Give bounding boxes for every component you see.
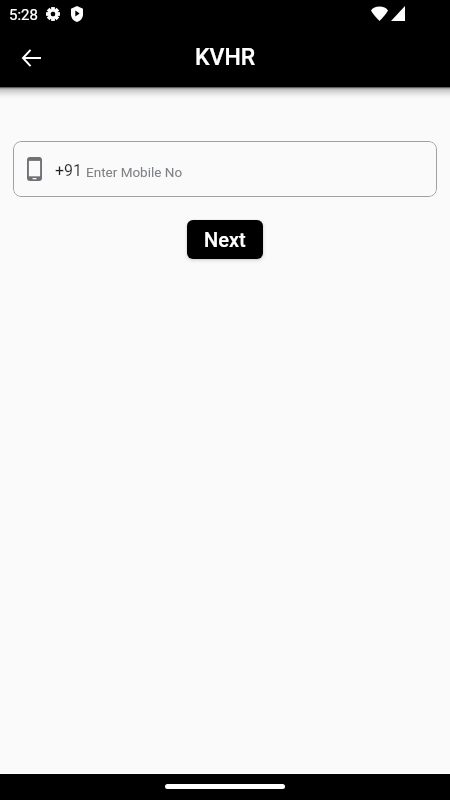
- button[interactable]: Back: [9, 36, 53, 80]
- staticText: +91: [55, 161, 83, 180]
- button[interactable]: Next: [187, 220, 263, 259]
- button[interactable]: +91: [13, 141, 437, 197]
- staticText: 5:28: [9, 6, 38, 24]
- staticText: Next: [204, 228, 246, 251]
- staticText: KVHR: [195, 44, 256, 71]
- staticText: Enter Mobile No: [86, 164, 183, 180]
